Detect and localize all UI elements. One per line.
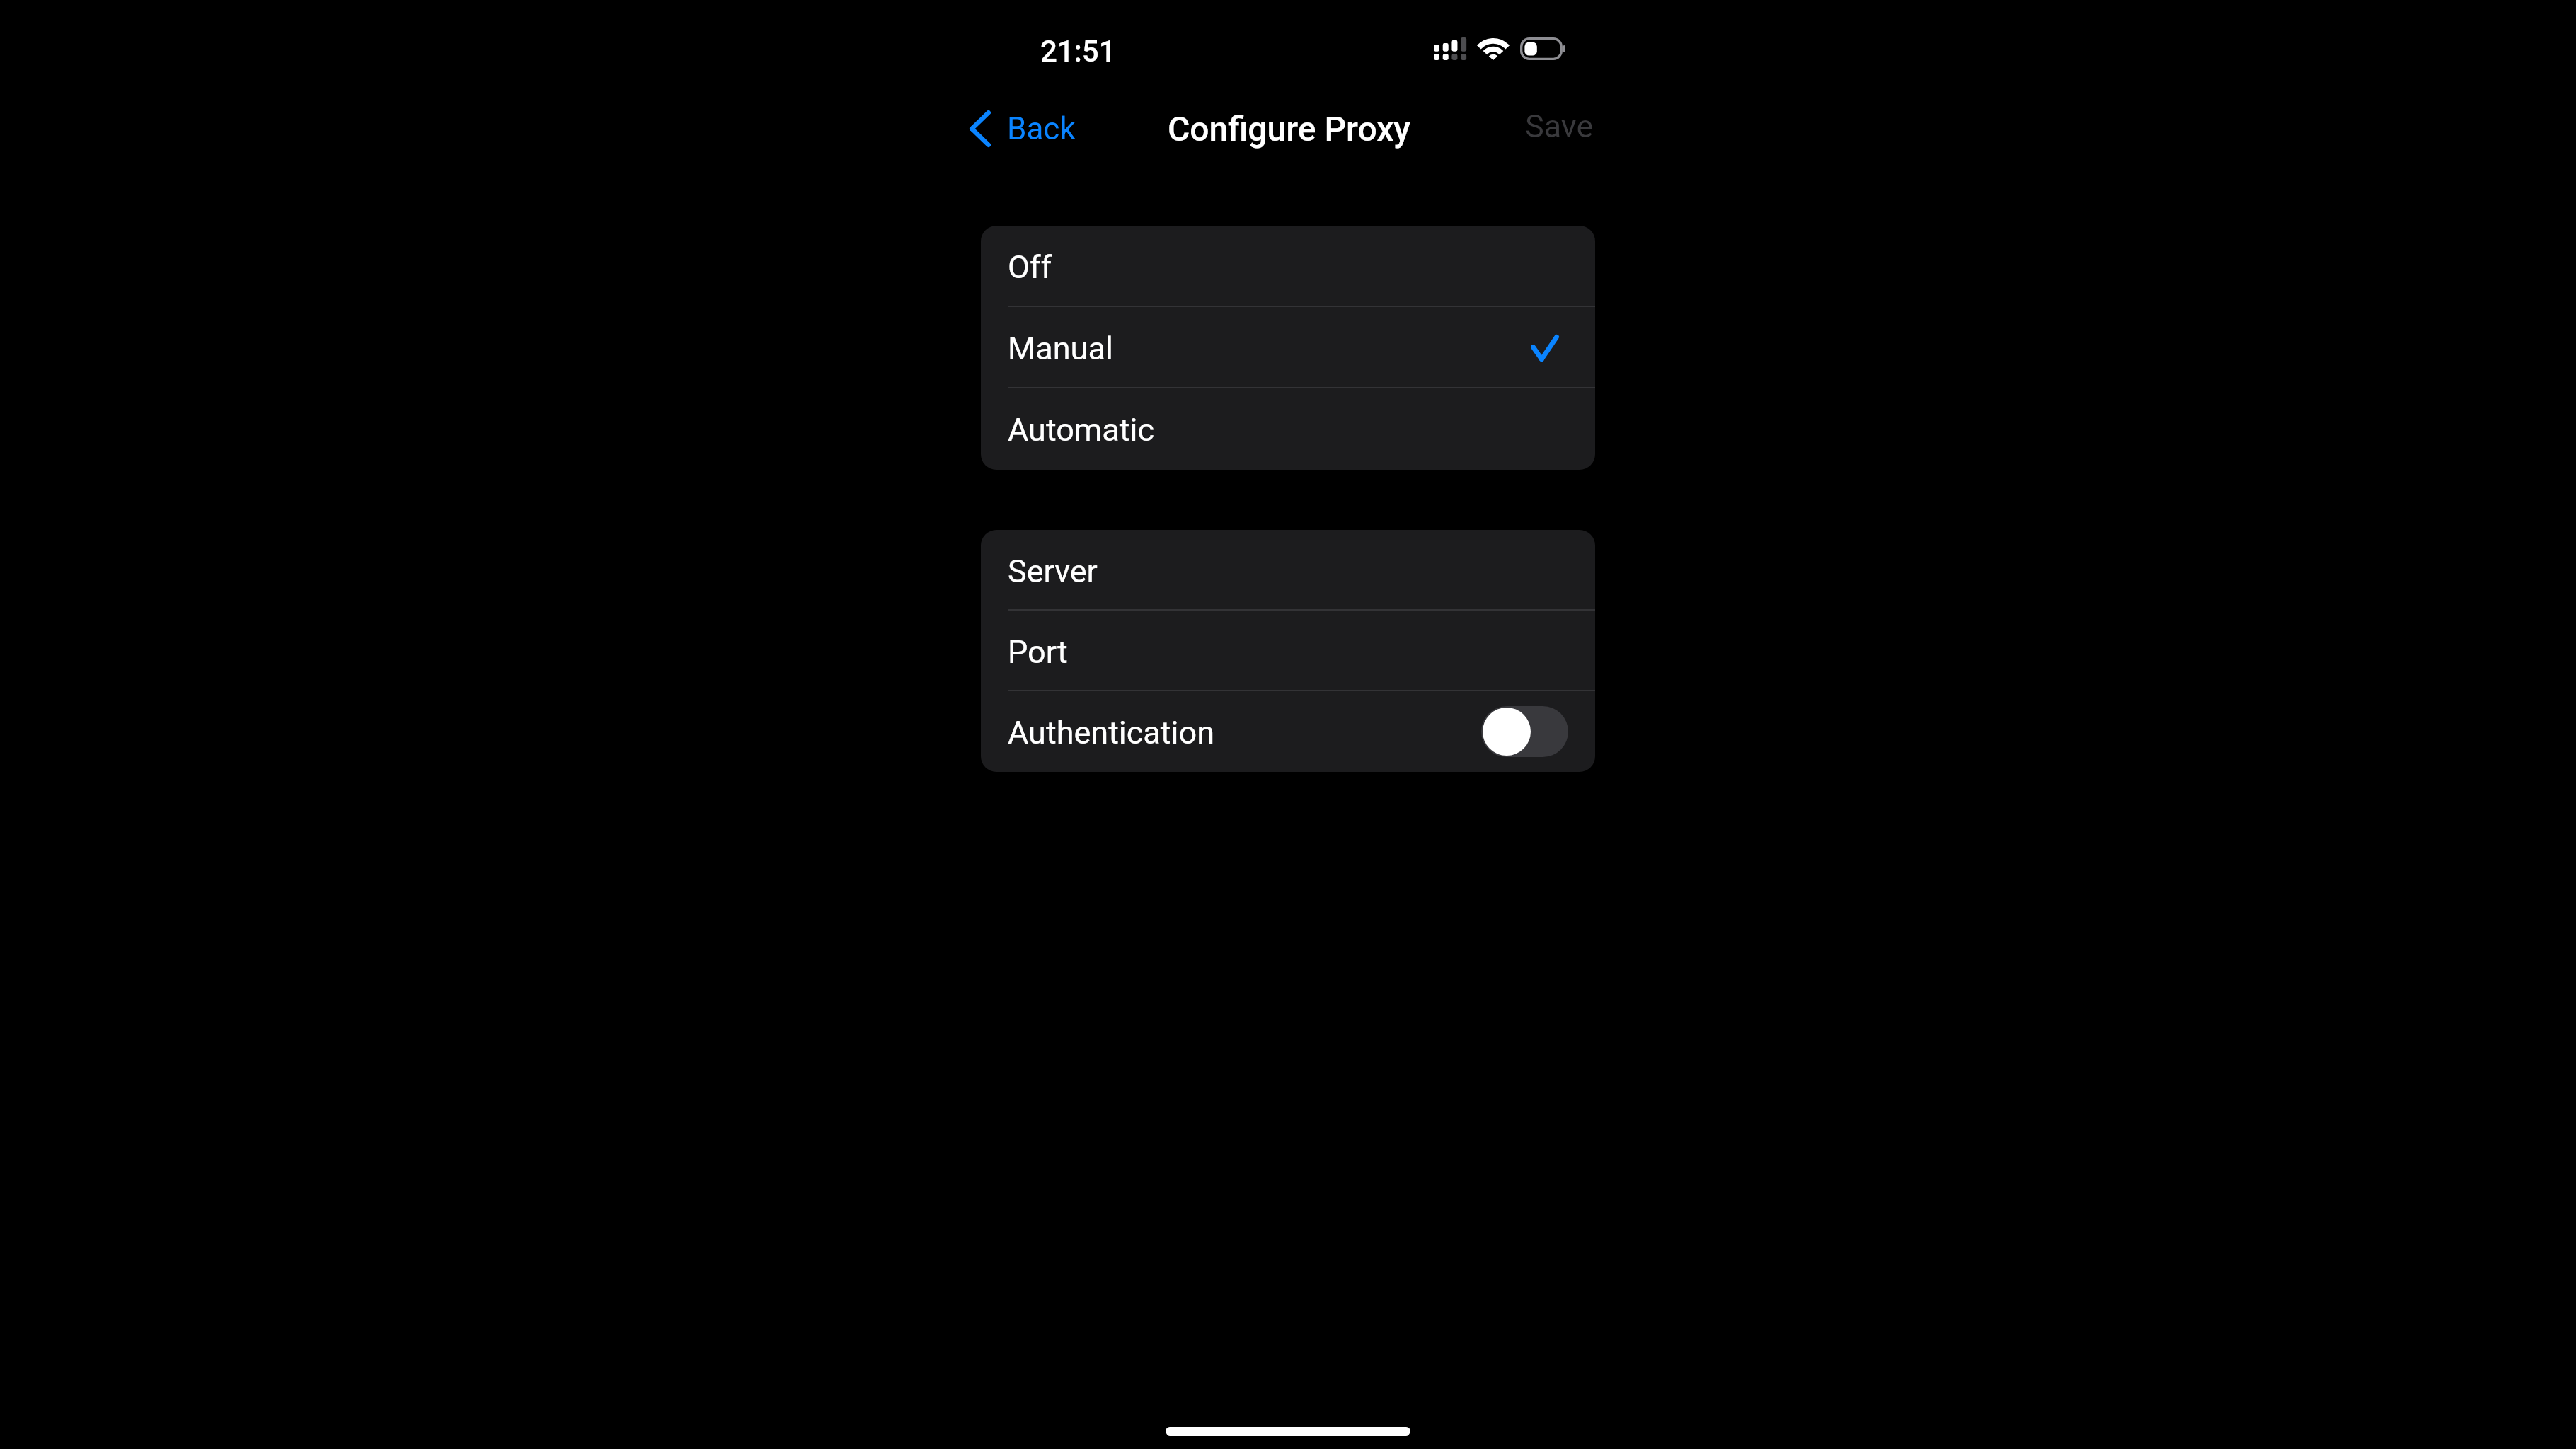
- staticText: Save: [1525, 108, 1594, 145]
- button[interactable]: Server: [981, 530, 1595, 611]
- other: Wi-Fi connected: [1478, 38, 1508, 60]
- staticText: Back: [1007, 110, 1076, 147]
- button[interactable]: Authentication: [981, 691, 1595, 772]
- button[interactable]: Manual: [981, 307, 1595, 388]
- other: Cellular signal strength: [1434, 37, 1466, 60]
- staticText: Automatic: [1008, 411, 1155, 449]
- button[interactable]: Port: [981, 611, 1595, 691]
- button[interactable]: Off: [981, 226, 1595, 307]
- staticText: Manual: [1008, 330, 1113, 367]
- staticText: Configure Proxy: [1168, 109, 1410, 149]
- button[interactable]: Automatic: [981, 388, 1595, 470]
- other: Selected: [1531, 335, 1559, 362]
- button[interactable]: Authentication, off: [1481, 706, 1568, 757]
- staticText: Server: [1008, 553, 1098, 590]
- button[interactable]: Back: [962, 102, 1087, 156]
- staticText: Port: [1008, 633, 1068, 671]
- button[interactable]: Save: [1514, 99, 1605, 154]
- staticText: Off: [1008, 248, 1052, 286]
- staticText: Authentication: [1008, 714, 1215, 751]
- other: Battery low: [1520, 37, 1567, 60]
- staticText: 21:51: [1040, 34, 1116, 69]
